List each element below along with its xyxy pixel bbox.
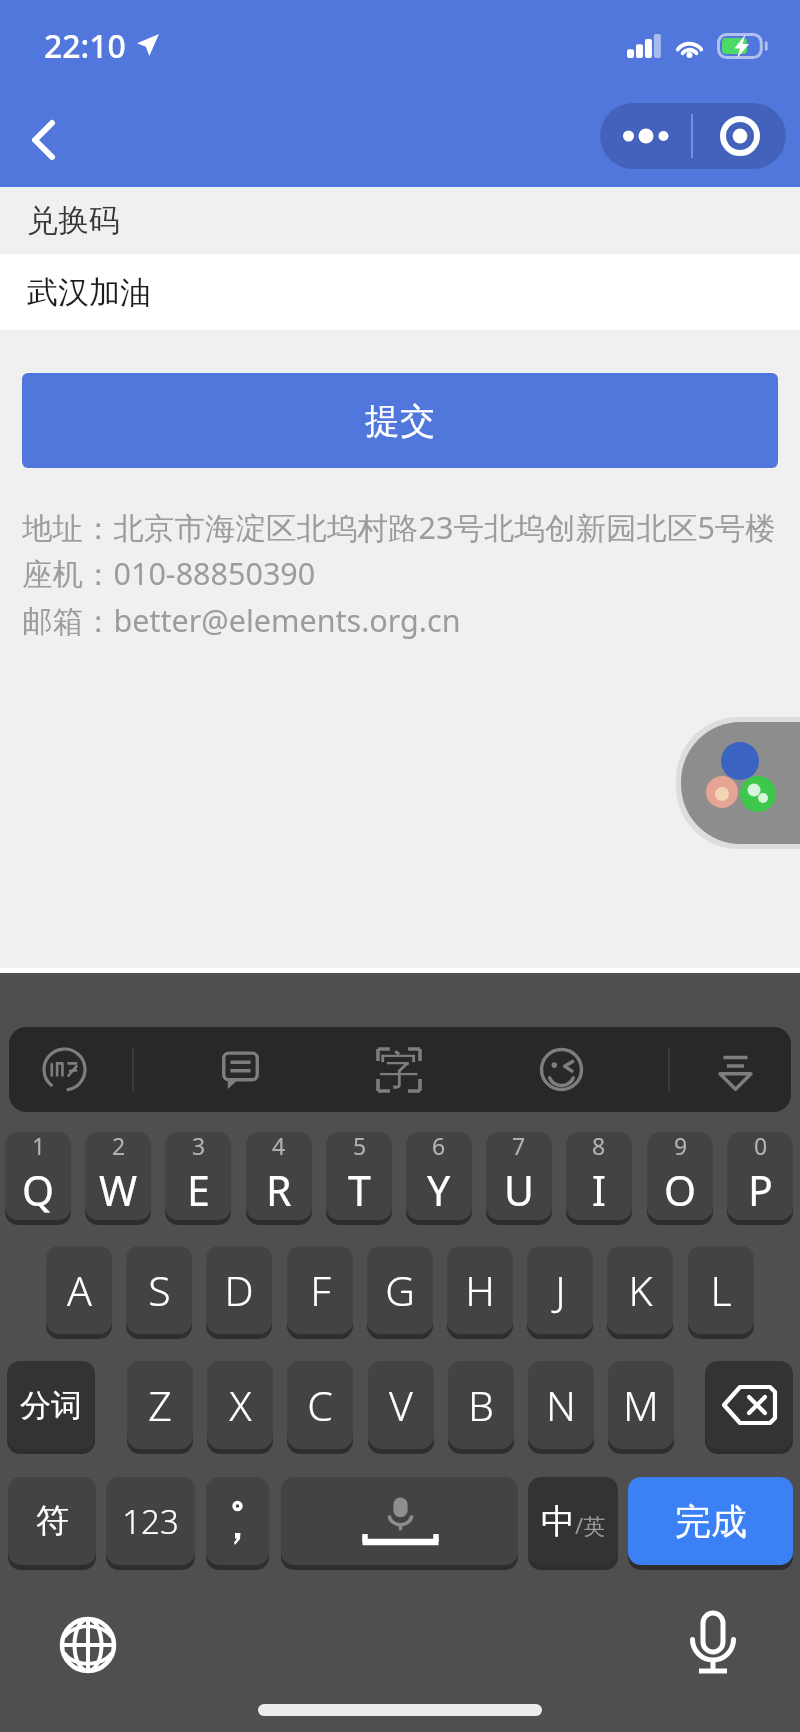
button[interactable]: G — [367, 1246, 433, 1334]
staticText: 6 — [432, 1132, 446, 1161]
staticText: O — [664, 1162, 697, 1218]
staticText: E — [187, 1162, 210, 1218]
button[interactable]: Voice input — [683, 1597, 743, 1671]
button[interactable]: Back — [14, 111, 72, 169]
staticText: C — [307, 1377, 333, 1433]
button[interactable]: L — [688, 1246, 754, 1334]
button[interactable]: D — [206, 1246, 272, 1334]
button[interactable]: Emoji — [525, 1027, 597, 1112]
staticText: J — [555, 1262, 566, 1318]
staticText: 9 — [674, 1132, 688, 1161]
staticText: 地址：北京市海淀区北坞村路23号北坞创新园北区5号楼 座机：010-888503… — [22, 506, 776, 641]
staticText: 3 — [192, 1132, 206, 1161]
staticText: U — [504, 1162, 534, 1218]
button[interactable]: J — [527, 1246, 593, 1334]
staticText: 兑换码 — [27, 201, 120, 240]
button[interactable]: 123 — [106, 1477, 195, 1565]
button[interactable]: 2 — [85, 1132, 151, 1220]
staticText: 4 — [272, 1132, 286, 1161]
staticText: 123 — [122, 1499, 179, 1544]
button[interactable]: 0 — [727, 1132, 793, 1220]
button[interactable]: 8 — [566, 1132, 632, 1220]
staticText: V — [389, 1377, 413, 1433]
button[interactable]: V — [368, 1361, 434, 1449]
button[interactable]: Close — [693, 103, 786, 169]
staticText: 武汉加油 — [27, 273, 151, 312]
staticText: Y — [427, 1162, 451, 1218]
staticText: 中 — [541, 1500, 575, 1543]
staticText: B — [468, 1377, 494, 1433]
staticText: /英 — [575, 1510, 606, 1540]
button[interactable]: 5 — [326, 1132, 392, 1220]
staticText: R — [266, 1162, 292, 1218]
button[interactable]: 分词 — [7, 1361, 95, 1449]
staticText: G — [385, 1262, 415, 1318]
staticText: 0 — [754, 1132, 768, 1161]
staticText: F — [310, 1262, 331, 1318]
staticText: A — [67, 1262, 92, 1318]
staticText: T — [348, 1162, 371, 1218]
button[interactable]: Backspace — [705, 1361, 793, 1449]
staticText: W — [99, 1162, 138, 1218]
staticText: 字 — [379, 1045, 419, 1095]
staticText: H — [465, 1262, 495, 1318]
button[interactable]: X — [207, 1361, 273, 1449]
button[interactable]: Collapse keyboard — [699, 1027, 771, 1112]
button[interactable]: 提交 — [22, 373, 778, 468]
button[interactable]: B — [448, 1361, 514, 1449]
button[interactable] — [206, 1477, 269, 1565]
button[interactable]: Switch language — [58, 1615, 118, 1675]
button[interactable]: Handwriting — [363, 1027, 435, 1112]
button[interactable]: 1 — [5, 1132, 71, 1220]
button[interactable]: S — [126, 1246, 192, 1334]
staticText: 5 — [353, 1132, 367, 1161]
button[interactable]: 6 — [406, 1132, 472, 1220]
button[interactable]: More — [600, 103, 691, 169]
button[interactable]: Space — [281, 1477, 518, 1565]
button[interactable]: Phrases — [204, 1027, 276, 1112]
button[interactable]: N — [528, 1361, 594, 1449]
button[interactable]: 完成 — [628, 1477, 793, 1565]
staticText: N — [546, 1377, 576, 1433]
button[interactable]: C — [287, 1361, 353, 1449]
staticText: S — [148, 1262, 171, 1318]
staticText: X — [229, 1377, 252, 1433]
button[interactable]: H — [447, 1246, 513, 1334]
button[interactable]: Assistive touch — [681, 722, 800, 844]
staticText: M — [623, 1377, 659, 1433]
button[interactable]: 7 — [486, 1132, 552, 1220]
staticText: 8 — [592, 1132, 606, 1161]
staticText: I — [592, 1162, 606, 1218]
button[interactable]: Z — [127, 1361, 193, 1449]
button[interactable]: A — [46, 1246, 112, 1334]
staticText: K — [628, 1262, 653, 1318]
staticText: 7 — [512, 1132, 526, 1161]
staticText: 提交 — [365, 399, 435, 443]
staticText: P — [748, 1162, 773, 1218]
staticText: 1 — [32, 1132, 46, 1161]
button[interactable]: M — [608, 1361, 674, 1449]
button[interactable]: 符 — [8, 1477, 96, 1565]
staticText: 符 — [36, 1500, 69, 1542]
button[interactable]: Input method — [28, 1027, 100, 1112]
button[interactable]: 9 — [647, 1132, 713, 1220]
button[interactable]: 3 — [165, 1132, 231, 1220]
button[interactable]: 中 — [528, 1477, 618, 1565]
staticText: 分词 — [20, 1386, 82, 1425]
staticText: Q — [22, 1162, 55, 1218]
staticText: 22:10 — [44, 24, 126, 68]
button[interactable]: F — [287, 1246, 353, 1334]
staticText: L — [710, 1262, 732, 1318]
staticText: Z — [148, 1377, 172, 1433]
button[interactable]: K — [607, 1246, 673, 1334]
button[interactable]: 4 — [246, 1132, 312, 1220]
staticText: 完成 — [675, 1499, 747, 1544]
staticText: 2 — [112, 1132, 126, 1161]
staticText: D — [224, 1262, 254, 1318]
